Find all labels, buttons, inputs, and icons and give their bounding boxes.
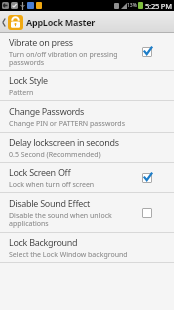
staticText: Lock Style — [9, 74, 48, 86]
button[interactable]: Lock Style — [0, 71, 174, 100]
staticText: 13% — [127, 2, 137, 9]
staticText: 5:25 PM — [145, 1, 172, 11]
button[interactable]: Change Passwords — [0, 101, 174, 132]
button[interactable]: Delay lockscreen in seconds — [0, 133, 174, 162]
button[interactable]: Lock Screen Off — [0, 163, 174, 192]
button[interactable]: AppLock Master — [0, 11, 174, 33]
staticText: Change PIN or PATTERN passwords — [9, 119, 126, 129]
staticText: Select the Lock Window background — [9, 250, 128, 260]
button[interactable]: Lock Background — [0, 233, 174, 262]
button[interactable]: Vibrate on press — [0, 33, 174, 70]
staticText: AppLock Master — [26, 16, 96, 28]
staticText: Lock Screen Off — [9, 166, 71, 178]
staticText: Delay lockscreen in seconds — [9, 136, 119, 148]
staticText: Vibrate on press — [9, 36, 73, 48]
staticText: 0.5 Second (Recommended) — [9, 150, 101, 160]
staticText: Lock Background — [9, 236, 78, 248]
staticText: Disable Sound Effect — [9, 197, 91, 209]
button[interactable]: Disable Sound Effect — [0, 193, 174, 232]
staticText: Lock when turn off screen — [9, 180, 95, 190]
staticText: Pattern — [9, 88, 34, 98]
staticText: Change Passwords — [9, 105, 85, 117]
staticText: Turn on/off vibration on pressing passwo… — [9, 50, 142, 67]
staticText: Disable the sound when unlock applicatio… — [9, 211, 142, 228]
